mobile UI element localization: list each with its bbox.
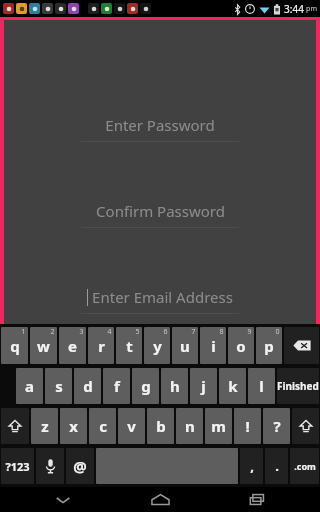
button[interactable]: g: [132, 368, 159, 404]
staticText: k: [228, 376, 238, 396]
staticText: ?: [273, 416, 281, 436]
staticText: n: [185, 416, 195, 436]
button[interactable]: a: [16, 368, 43, 404]
staticText: i: [211, 336, 216, 356]
button[interactable]: o: [228, 327, 254, 364]
staticText: l: [259, 376, 264, 396]
button[interactable]: ?: [263, 408, 290, 444]
staticText: pm: [306, 4, 317, 14]
staticText: f: [114, 376, 120, 396]
staticText: r: [98, 336, 105, 356]
staticText: 8: [219, 327, 224, 337]
button[interactable]: !: [234, 408, 261, 444]
staticText: .com: [294, 460, 316, 472]
button[interactable]: x: [60, 408, 87, 444]
button[interactable]: d: [74, 368, 101, 404]
staticText: c: [99, 416, 107, 436]
staticText: !: [245, 416, 250, 436]
staticText: 0: [275, 327, 280, 337]
staticText: q: [10, 336, 20, 356]
button[interactable]: f: [103, 368, 130, 404]
button[interactable]: Shift: [1, 408, 29, 444]
staticText: b: [156, 416, 166, 436]
staticText: 1: [21, 327, 26, 337]
button[interactable]: Hide keyboard: [28, 487, 98, 512]
button[interactable]: Shift: [292, 408, 319, 444]
button[interactable]: Finished: [277, 368, 319, 404]
button[interactable]: ,: [240, 448, 263, 484]
staticText: t: [126, 336, 133, 356]
button[interactable]: Home: [125, 487, 195, 512]
button[interactable]: c: [89, 408, 116, 444]
button[interactable]: Backspace: [284, 327, 319, 364]
button[interactable]: Recents: [223, 487, 293, 512]
staticText: 3: [79, 327, 84, 337]
button[interactable]: y: [144, 327, 170, 364]
staticText: 3:44: [284, 2, 304, 16]
button[interactable]: m: [205, 408, 232, 444]
staticText: 6: [163, 327, 168, 337]
staticText: 9: [247, 327, 252, 337]
staticText: 2: [50, 327, 55, 337]
staticText: @: [73, 456, 87, 476]
staticText: 4: [107, 327, 112, 337]
button[interactable]: Voice input: [36, 448, 64, 484]
button[interactable]: z: [31, 408, 58, 444]
staticText: ,: [250, 457, 254, 475]
staticText: z: [41, 416, 49, 436]
button[interactable]: Enter Email Address: [4, 285, 316, 314]
staticText: s: [55, 376, 63, 396]
staticText: h: [170, 376, 180, 396]
button[interactable]: h: [161, 368, 188, 404]
staticText: w: [37, 336, 50, 356]
staticText: ?123: [5, 459, 30, 474]
staticText: a: [25, 376, 34, 396]
button[interactable]: p: [256, 327, 282, 364]
staticText: j: [201, 376, 206, 396]
button[interactable]: t: [116, 327, 142, 364]
button[interactable]: @: [66, 448, 94, 484]
button[interactable]: n: [176, 408, 203, 444]
staticText: x: [69, 416, 78, 436]
button[interactable]: j: [190, 368, 217, 404]
button[interactable]: i: [200, 327, 226, 364]
staticText: v: [127, 416, 136, 436]
button[interactable]: k: [219, 368, 246, 404]
button[interactable]: b: [147, 408, 174, 444]
staticText: Enter Password: [105, 115, 215, 135]
button[interactable]: e: [59, 327, 86, 364]
button[interactable]: u: [172, 327, 198, 364]
button[interactable]: r: [88, 327, 114, 364]
staticText: Enter Email Address: [92, 287, 233, 307]
staticText: Confirm Password: [96, 201, 225, 221]
button[interactable]: .com: [290, 448, 319, 484]
button[interactable]: q: [1, 327, 28, 364]
staticText: .: [275, 457, 279, 475]
button[interactable]: v: [118, 408, 145, 444]
button[interactable]: ?123: [1, 448, 34, 484]
staticText: u: [180, 336, 190, 356]
staticText: d: [83, 376, 93, 396]
button[interactable]: l: [248, 368, 275, 404]
staticText: e: [68, 336, 77, 356]
staticText: g: [141, 376, 151, 396]
staticText: Finished: [277, 379, 319, 393]
staticText: 5: [135, 327, 140, 337]
staticText: 7: [191, 327, 196, 337]
button[interactable]: .: [265, 448, 288, 484]
button[interactable]: Confirm Password: [4, 199, 316, 228]
staticText: p: [264, 336, 274, 356]
staticText: y: [153, 336, 162, 356]
button[interactable]: s: [45, 368, 72, 404]
staticText: m: [211, 416, 226, 436]
button[interactable]: Enter Password: [4, 113, 316, 142]
button[interactable]: w: [30, 327, 57, 364]
staticText: o: [236, 336, 246, 356]
